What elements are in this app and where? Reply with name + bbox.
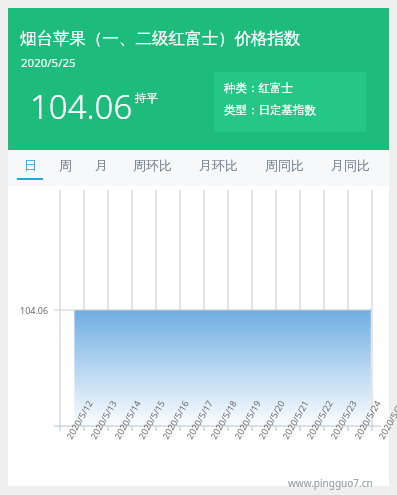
button[interactable]: 月 <box>83 150 119 186</box>
staticText: 104.06 <box>30 84 133 129</box>
staticText: 烟台苹果（一、二级红富士）价格指数 <box>20 28 301 49</box>
button[interactable]: 周同比 <box>251 150 317 186</box>
staticText: 月环比 <box>199 157 238 173</box>
staticText: 周环比 <box>133 157 172 173</box>
staticText: 持平 <box>135 91 158 105</box>
staticText: 日 <box>24 157 37 173</box>
button[interactable]: 日 <box>12 150 47 186</box>
staticText: 种类：红富士 <box>224 81 293 95</box>
staticText: 类型：日定基指数 <box>224 103 316 117</box>
button[interactable]: 月同比 <box>317 150 383 186</box>
button[interactable]: 月环比 <box>185 150 251 186</box>
staticText: 周同比 <box>265 157 304 173</box>
button[interactable]: 周 <box>47 150 83 186</box>
staticText: 月 <box>95 157 108 173</box>
staticText: 月同比 <box>331 157 370 173</box>
button[interactable]: 周环比 <box>119 150 185 186</box>
staticText: 2020/5/25 <box>21 55 76 71</box>
staticText: 周 <box>59 157 72 173</box>
